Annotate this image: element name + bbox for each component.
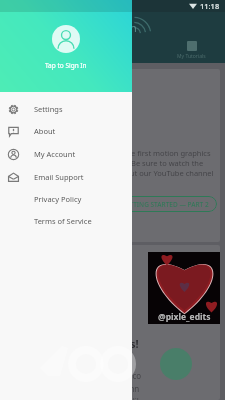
staticText: @pixle_edits — [158, 311, 211, 323]
staticText: Tap to Sign In — [45, 61, 87, 70]
staticText: 11:18 — [200, 1, 220, 11]
button[interactable]: My Tutorials — [177, 41, 206, 60]
staticText: GETTING STARTED — PART 2 — [121, 200, 209, 209]
button[interactable]: Email Support — [0, 166, 132, 188]
staticText: videos in sequence and check out our You… — [19, 168, 214, 178]
staticText: Terms of Service — [34, 216, 92, 226]
staticText: About — [34, 126, 56, 136]
button[interactable]: GETTING STARTED — PART 2 — [113, 196, 217, 212]
staticText: Email Support — [34, 172, 84, 182]
staticText: My Account — [34, 149, 76, 159]
staticText: els and gave original posts a like — [24, 396, 146, 400]
staticText: Hi there and welcome! This is the first … — [19, 148, 211, 158]
button[interactable]: Tap to Sign In — [0, 0, 132, 92]
button[interactable]: Terms of Service — [0, 210, 132, 232]
staticText: Valentine Shoutouts! — [24, 336, 139, 351]
button[interactable]: About — [0, 120, 132, 142]
button[interactable]: My Account — [0, 143, 132, 165]
button[interactable]: Privacy Policy — [0, 188, 132, 210]
staticText: My Tutorials — [177, 53, 206, 60]
staticText: we feature artwork from the co — [24, 370, 142, 381]
staticText: Settings — [34, 104, 63, 114]
staticText: tutorial in the new video series. Be sur… — [19, 158, 204, 168]
button[interactable]: Settings — [0, 98, 132, 120]
staticText: mmunity who sent their chann — [24, 383, 140, 394]
staticText: n — [130, 20, 137, 35]
staticText: Privacy Policy — [34, 194, 82, 204]
